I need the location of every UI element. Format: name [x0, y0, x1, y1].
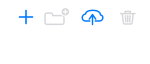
button[interactable]: Delete: [113, 1, 143, 33]
button[interactable]: New: [11, 1, 41, 33]
button[interactable]: New Folder: [41, 1, 71, 33]
button[interactable]: Upload to iCloud: [77, 1, 107, 33]
